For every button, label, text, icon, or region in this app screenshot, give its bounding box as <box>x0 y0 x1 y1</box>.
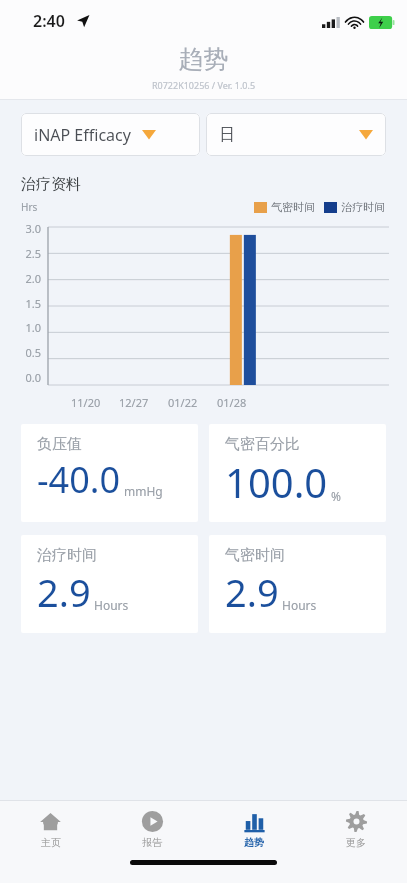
staticText: 气密时间 <box>271 200 315 214</box>
staticText: 报告 <box>142 836 162 849</box>
staticText: mmHg <box>124 483 163 499</box>
staticText: 气密百分比 <box>225 435 300 454</box>
other: 趋势 <box>243 810 266 833</box>
staticText: 1.5 <box>7 296 41 311</box>
button[interactable]: 报告 <box>101 806 203 853</box>
button[interactable]: 气密百分比 <box>209 424 386 522</box>
other: 更多 <box>345 810 368 833</box>
button[interactable]: 更多 <box>305 806 407 853</box>
staticText: 趋势 <box>244 836 264 849</box>
button[interactable]: 气密时间 <box>209 535 386 633</box>
staticText: iNAP Efficacy <box>34 124 131 146</box>
staticText: 主页 <box>41 836 61 849</box>
staticText: Hours <box>94 597 129 613</box>
other: 主页 <box>39 810 62 833</box>
staticText: 负压值 <box>37 435 82 454</box>
staticText: 2.0 <box>7 271 41 286</box>
button[interactable]: 治疗时间 <box>21 535 198 633</box>
staticText: 12/27 <box>119 395 149 410</box>
other: 报告 <box>141 810 164 833</box>
staticText: 1.0 <box>7 320 41 335</box>
staticText: Hours <box>282 597 317 613</box>
button[interactable]: 主页 <box>0 806 101 853</box>
staticText: 治疗时间 <box>341 200 385 214</box>
staticText: 2.5 <box>7 246 41 261</box>
staticText: -40.0 <box>37 455 121 504</box>
button[interactable]: 负压值 <box>21 424 198 522</box>
staticText: 日 <box>219 125 235 145</box>
staticText: 趋势 <box>0 44 407 75</box>
staticText: 2:40 <box>33 10 65 32</box>
button[interactable]: 日 <box>206 113 386 156</box>
staticText: 2.9 <box>225 566 279 618</box>
staticText: 01/28 <box>217 395 247 410</box>
staticText: 治疗资料 <box>21 175 81 194</box>
staticText: 3.0 <box>7 221 41 236</box>
staticText: 治疗时间 <box>37 546 97 565</box>
staticText: 11/20 <box>71 395 101 410</box>
staticText: 更多 <box>346 836 366 849</box>
staticText: 2.9 <box>37 566 91 618</box>
staticText: R0722K10256 / Ver. 1.0.5 <box>0 79 407 91</box>
staticText: 100.0 <box>225 455 328 509</box>
staticText: 0.0 <box>7 370 41 385</box>
button[interactable]: 趋势 <box>203 806 305 853</box>
staticText: 0.5 <box>7 345 41 360</box>
staticText: Hrs <box>21 200 38 214</box>
staticText: 01/22 <box>168 395 198 410</box>
button[interactable]: iNAP Efficacy <box>21 113 200 156</box>
staticText: 气密时间 <box>225 546 285 565</box>
staticText: % <box>331 488 341 504</box>
